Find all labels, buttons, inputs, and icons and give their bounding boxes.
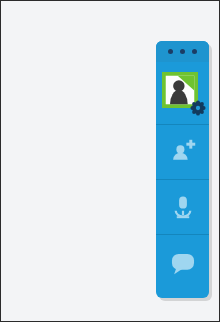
button[interactable]: Messages xyxy=(156,235,209,291)
button[interactable]: More options xyxy=(156,41,209,62)
button[interactable]: Voice input xyxy=(156,180,209,234)
button[interactable]: Add person xyxy=(156,125,209,179)
button[interactable]: Profile photo and settings xyxy=(156,62,209,124)
